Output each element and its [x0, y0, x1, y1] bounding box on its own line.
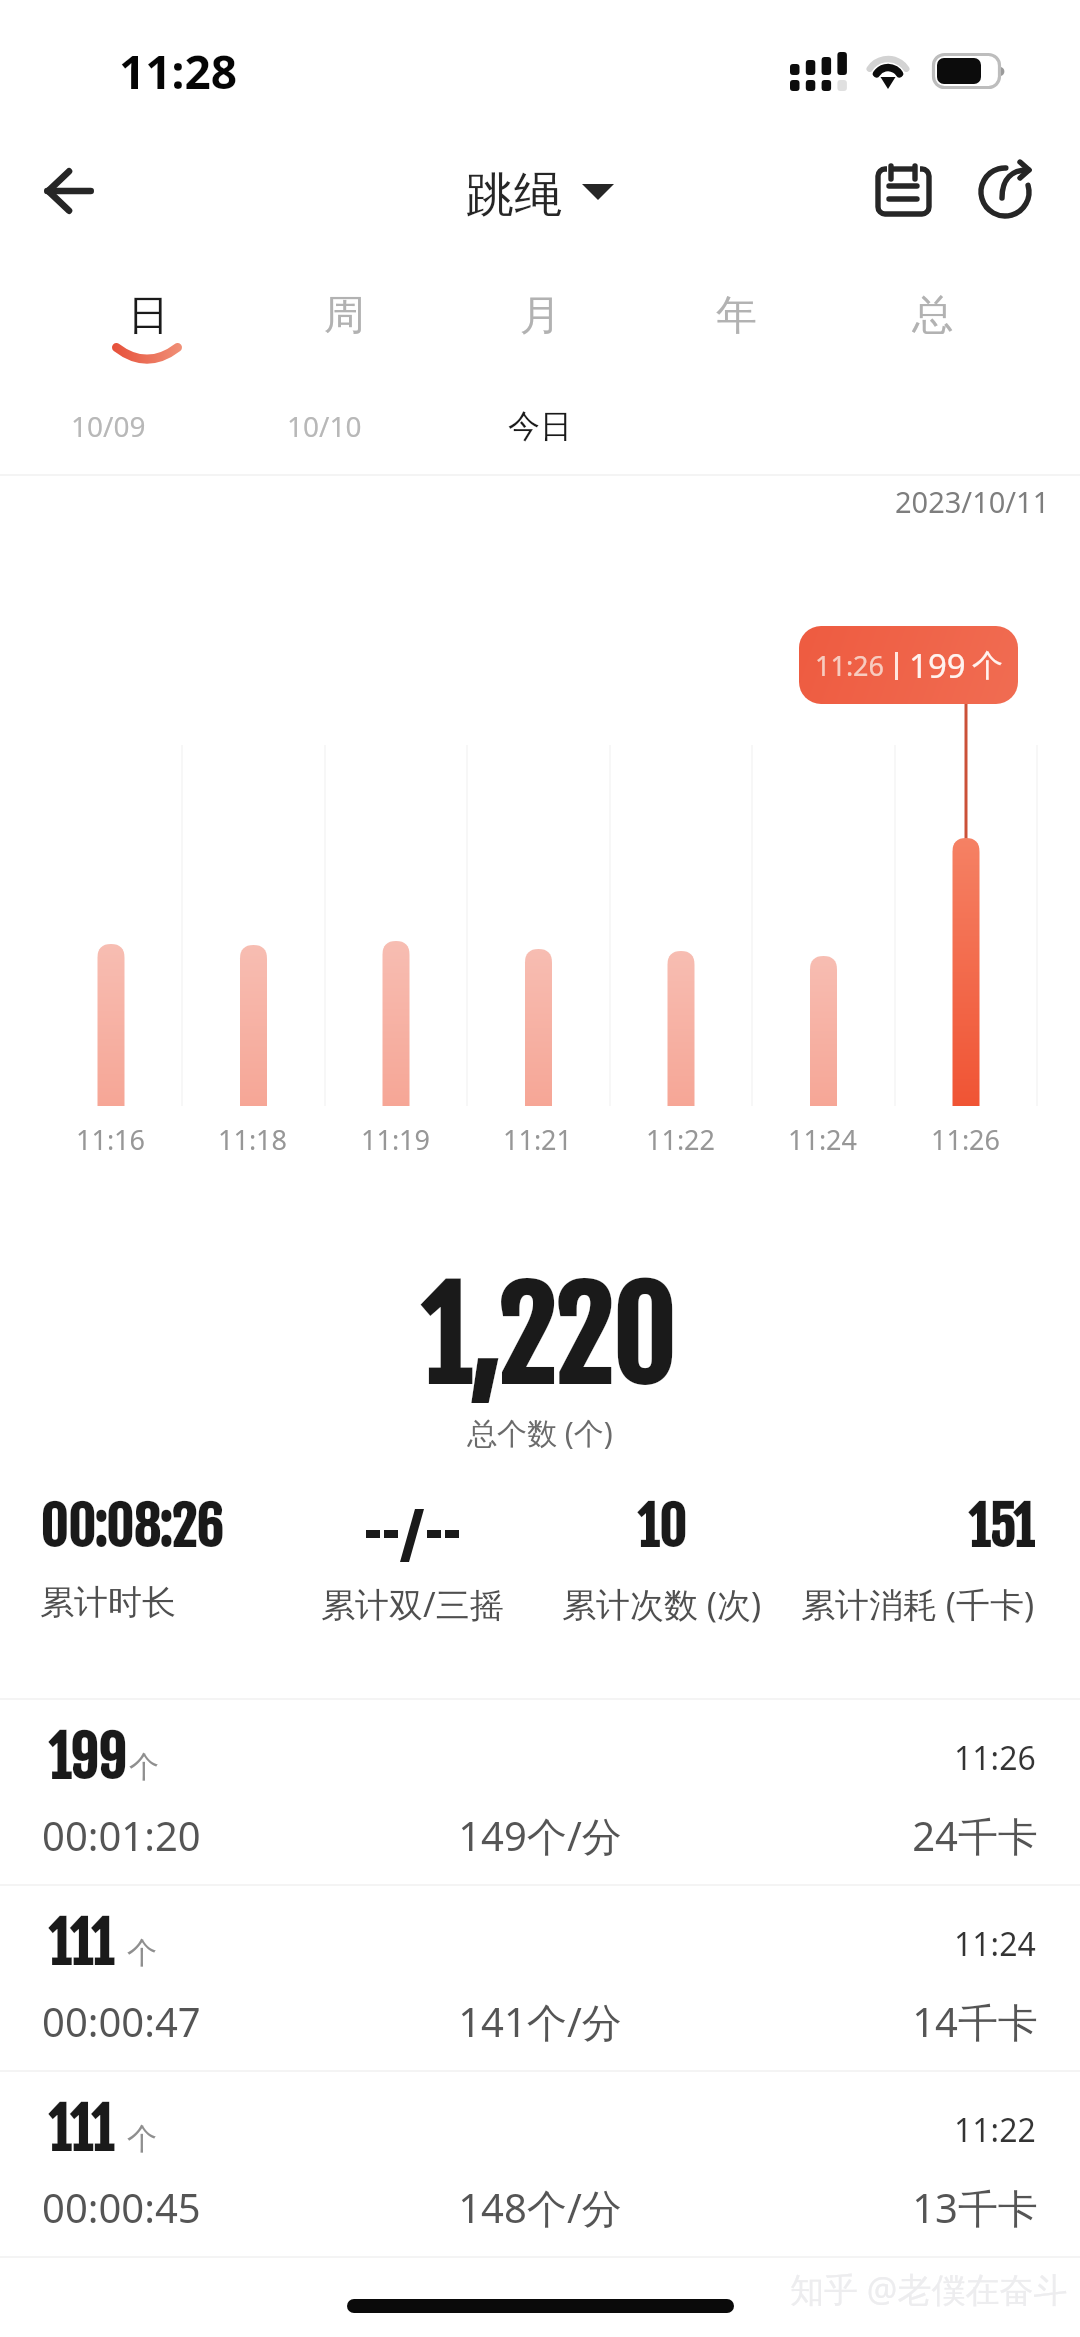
staticText: 个: [127, 2120, 157, 2158]
button[interactable]: 111: [0, 2070, 1080, 2256]
button[interactable]: 总: [834, 290, 1030, 386]
staticText: 10/09: [71, 407, 146, 445]
staticText: 11:24: [788, 1121, 858, 1158]
button[interactable]: Back: [11, 133, 127, 249]
button[interactable]: 111: [0, 1884, 1080, 2070]
button[interactable]: Share: [948, 135, 1058, 245]
staticText: 累计时长: [40, 1581, 176, 1624]
staticText: 148个/分: [374, 2180, 706, 2235]
staticText: 111: [48, 2096, 113, 2165]
staticText: 个: [972, 646, 1003, 685]
staticText: 日: [128, 290, 169, 342]
staticText: 10/10: [287, 407, 362, 445]
button[interactable]: 10/09: [0, 400, 216, 452]
button[interactable]: 月: [442, 290, 638, 386]
staticText: 2023/10/11: [895, 482, 1050, 521]
staticText: 今日: [508, 406, 572, 446]
staticText: 10: [637, 1494, 686, 1556]
staticText: 个: [129, 1748, 159, 1786]
staticText: 199: [909, 643, 966, 688]
staticText: 13千卡: [706, 2180, 1038, 2235]
staticText: 111: [48, 1910, 113, 1979]
staticText: 11:16: [76, 1121, 146, 1158]
staticText: 11:19: [361, 1121, 431, 1158]
button[interactable]: 10/10: [216, 400, 432, 452]
button[interactable]: 今日: [432, 400, 648, 452]
staticText: 24千卡: [706, 1808, 1038, 1863]
staticText: 11:26: [954, 1736, 1036, 1780]
staticText: 11:28: [119, 40, 238, 103]
staticText: 11:26: [931, 1121, 1001, 1158]
staticText: 11:24: [954, 1922, 1036, 1966]
staticText: 累计消耗 (千卡): [801, 1581, 1035, 1627]
staticText: 累计次数 (次): [562, 1581, 762, 1627]
staticText: 199: [48, 1724, 126, 1793]
staticText: 个: [127, 1934, 157, 1972]
button[interactable]: 11:26: [799, 626, 1018, 704]
staticText: 11:26: [815, 647, 885, 684]
button[interactable]: 周: [246, 290, 442, 386]
staticText: 周: [324, 290, 365, 342]
staticText: 1,220: [420, 1262, 674, 1414]
staticText: 00:08:26: [40, 1494, 223, 1556]
staticText: 14千卡: [706, 1994, 1038, 2049]
staticText: 总个数 (个): [467, 1412, 613, 1453]
button[interactable]: 年: [638, 290, 834, 386]
button[interactable]: 199: [0, 1698, 1080, 1884]
staticText: 00:01:20: [42, 1808, 374, 1862]
staticText: 149个/分: [374, 1808, 706, 1863]
staticText: 累计双/三摇: [321, 1581, 504, 1627]
staticText: 11:18: [218, 1121, 288, 1158]
staticText: 00:00:45: [42, 2180, 374, 2234]
staticText: 151: [968, 1494, 1035, 1556]
staticText: 总: [912, 290, 953, 342]
button[interactable]: Records: [848, 135, 958, 245]
staticText: 141个/分: [374, 1994, 706, 2049]
staticText: 11:22: [954, 2108, 1036, 2152]
staticText: 00:00:47: [42, 1994, 374, 2048]
staticText: 月: [520, 290, 561, 342]
staticText: 知乎 @老僕在奋斗: [790, 2266, 1068, 2312]
button[interactable]: 日: [51, 290, 246, 386]
staticText: 跳绳: [466, 165, 562, 225]
staticText: 11:22: [646, 1121, 716, 1158]
staticText: 年: [716, 290, 757, 342]
button[interactable]: 跳绳: [466, 165, 614, 225]
staticText: 11:21: [503, 1121, 573, 1158]
